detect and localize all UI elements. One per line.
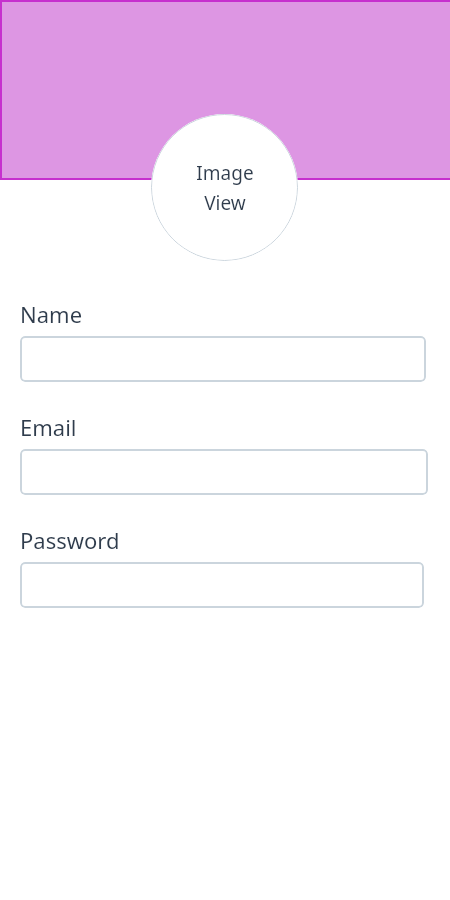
staticText: Name <box>20 299 83 329</box>
button[interactable]: Email <box>20 412 77 442</box>
button[interactable]: Image View <box>151 114 298 261</box>
button[interactable]: Name input field <box>20 336 426 382</box>
button[interactable]: Name <box>20 299 83 329</box>
button[interactable]: Email input field <box>20 449 428 495</box>
staticText: Image View <box>196 160 254 215</box>
staticText: Password <box>20 525 120 555</box>
staticText: Email <box>20 412 77 442</box>
button[interactable]: Password <box>20 525 120 555</box>
button[interactable]: Password input field <box>20 562 424 608</box>
